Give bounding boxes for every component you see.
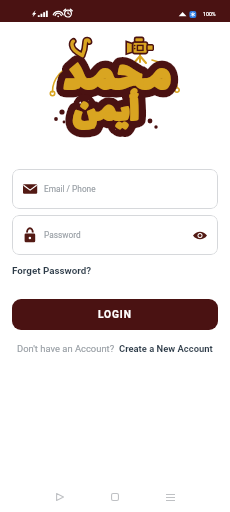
staticText: Create a New Account bbox=[119, 343, 213, 354]
staticText: 100% bbox=[203, 11, 216, 17]
staticText: Password bbox=[44, 230, 81, 240]
staticText: Don't have an Account? bbox=[17, 343, 119, 354]
staticText: Email / Phone bbox=[44, 184, 96, 194]
button[interactable]: Forget Password? bbox=[12, 265, 92, 276]
button[interactable]: Show password bbox=[190, 225, 210, 245]
staticText: Forget Password? bbox=[12, 265, 92, 276]
button[interactable]: Create a New Account bbox=[119, 343, 213, 354]
button[interactable]: Password bbox=[12, 215, 218, 255]
button[interactable]: Home bbox=[100, 482, 130, 512]
staticText: LOGIN bbox=[98, 309, 132, 321]
button[interactable]: LOGIN bbox=[12, 299, 218, 330]
button[interactable]: Recent apps bbox=[155, 482, 185, 512]
button[interactable]: Back bbox=[45, 482, 75, 512]
button[interactable]: Email / Phone bbox=[12, 169, 218, 209]
